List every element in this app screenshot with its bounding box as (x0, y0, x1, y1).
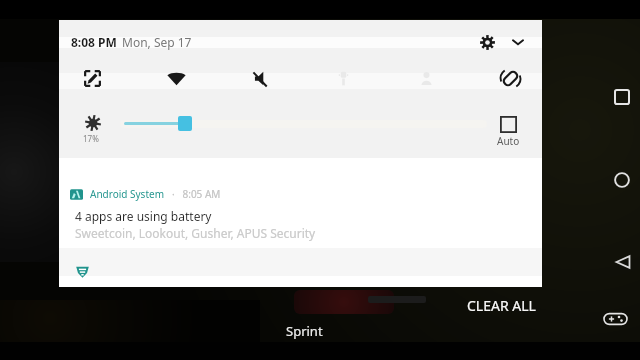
button[interactable]: Wi-Fi (160, 62, 192, 94)
button[interactable]: CLEAR ALL (464, 293, 539, 318)
button[interactable]: Android System (59, 175, 542, 287)
button[interactable]: Game mode (603, 310, 628, 328)
staticText: Android System (90, 187, 165, 201)
staticText: 4 apps are using battery (75, 208, 212, 224)
button[interactable]: Sound (243, 62, 275, 94)
staticText: CLEAR ALL (467, 296, 536, 315)
staticText: 17% (83, 133, 99, 144)
button[interactable]: Settings (474, 29, 500, 55)
button[interactable]: Home (608, 166, 636, 194)
button[interactable]: Security app (71, 260, 93, 282)
staticText: Mon, Sep 17 (122, 34, 192, 50)
button[interactable]: Recents (608, 83, 636, 111)
button[interactable]: Screenshot (76, 62, 108, 94)
button[interactable]: Collapse (505, 29, 531, 55)
button[interactable]: Auto (489, 110, 527, 156)
staticText: 8:08 PM (71, 34, 117, 50)
staticText: · 8:05 AM (172, 187, 221, 201)
button[interactable]: Flashlight (327, 62, 359, 94)
button[interactable]: Cast (410, 62, 442, 94)
staticText: Auto (497, 134, 520, 148)
button[interactable]: Auto rotate (494, 62, 526, 94)
staticText: Sprint (286, 322, 323, 340)
button[interactable]: Brightness (120, 112, 487, 138)
staticText: Sweetcoin, Lookout, Gusher, APUS Securit… (75, 225, 316, 241)
button[interactable]: Back (609, 248, 637, 276)
